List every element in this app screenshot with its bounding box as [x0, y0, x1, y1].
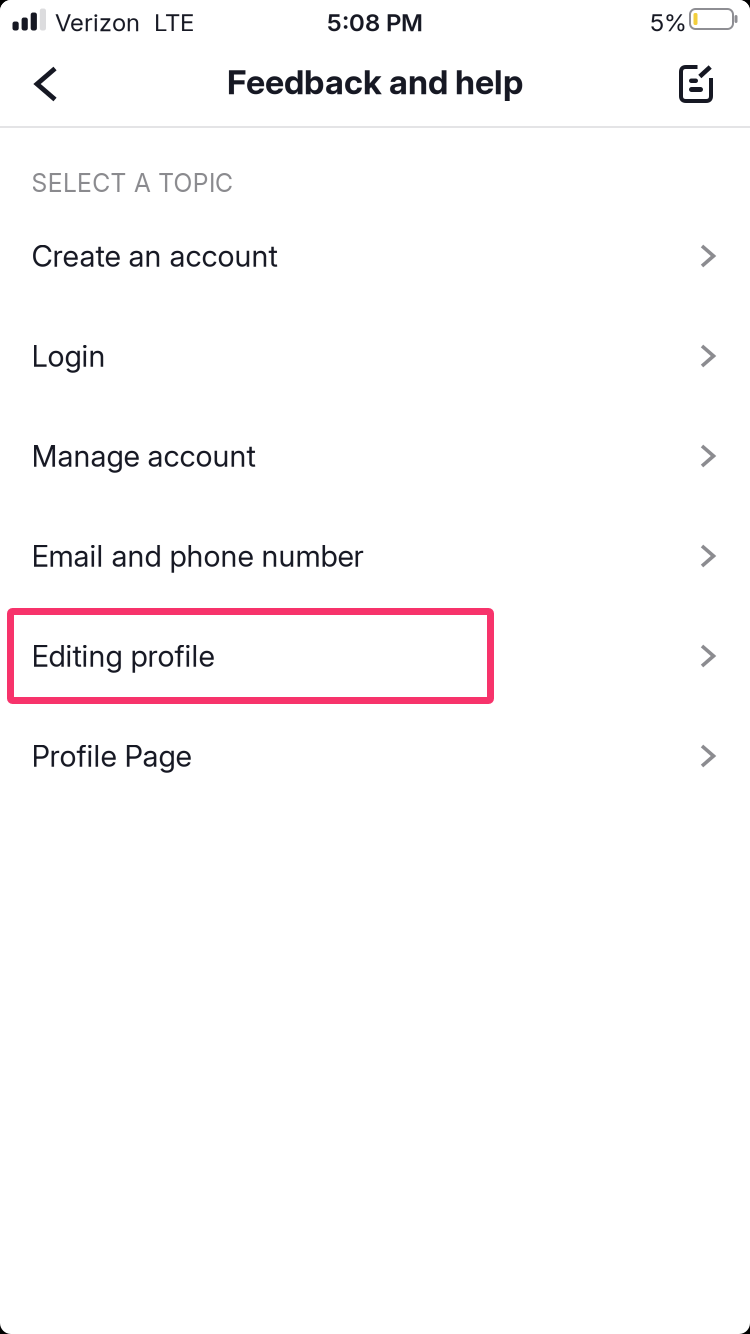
staticText: 5:08 PM: [327, 8, 423, 37]
button[interactable]: Profile Page: [0, 706, 750, 806]
button[interactable]: Manage account: [0, 406, 750, 506]
staticText: Editing profile: [31, 638, 214, 674]
button[interactable]: Editing profile: [0, 606, 750, 706]
button[interactable]: Back: [0, 42, 92, 126]
staticText: Profile Page: [31, 738, 191, 774]
staticText: Email and phone number: [31, 538, 363, 574]
button[interactable]: Email and phone number: [0, 506, 750, 606]
staticText: Create an account: [31, 238, 277, 274]
staticText: SELECT A TOPIC: [31, 168, 233, 198]
button[interactable]: Create an account: [0, 206, 750, 306]
staticText: Manage account: [31, 438, 255, 474]
button[interactable]: Login: [0, 306, 750, 406]
staticText: Login: [31, 338, 105, 374]
staticText: 5%: [650, 8, 687, 37]
staticText: LTE: [154, 8, 194, 37]
button[interactable]: Write feedback: [642, 42, 750, 126]
staticText: Feedback and help: [227, 62, 523, 102]
staticText: Verizon: [55, 8, 140, 37]
